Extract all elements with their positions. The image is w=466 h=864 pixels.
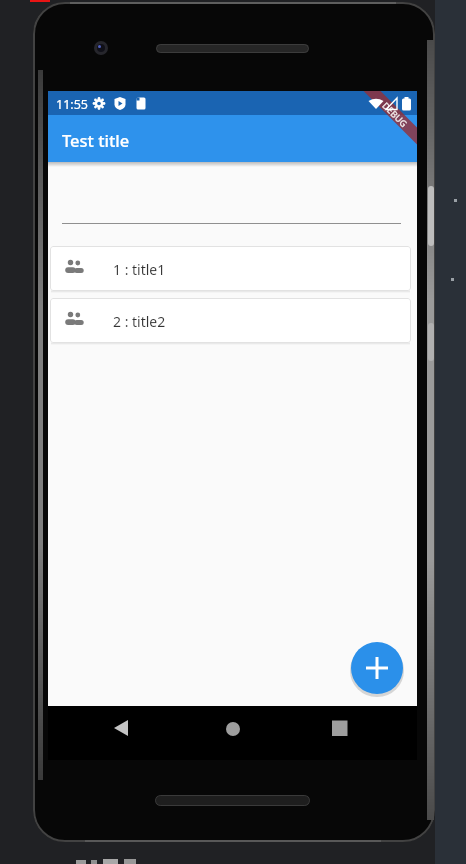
- staticText: 1 : title1: [113, 260, 166, 279]
- staticText: 2 : title2: [113, 312, 166, 331]
- button[interactable]: 1 : title1: [50, 246, 411, 291]
- button[interactable]: 2 : title2: [50, 298, 411, 343]
- staticText: DEBUG: [380, 99, 411, 130]
- staticText: Test title: [62, 129, 130, 151]
- staticText: 11:55: [56, 96, 88, 113]
- button[interactable]: [351, 642, 403, 694]
